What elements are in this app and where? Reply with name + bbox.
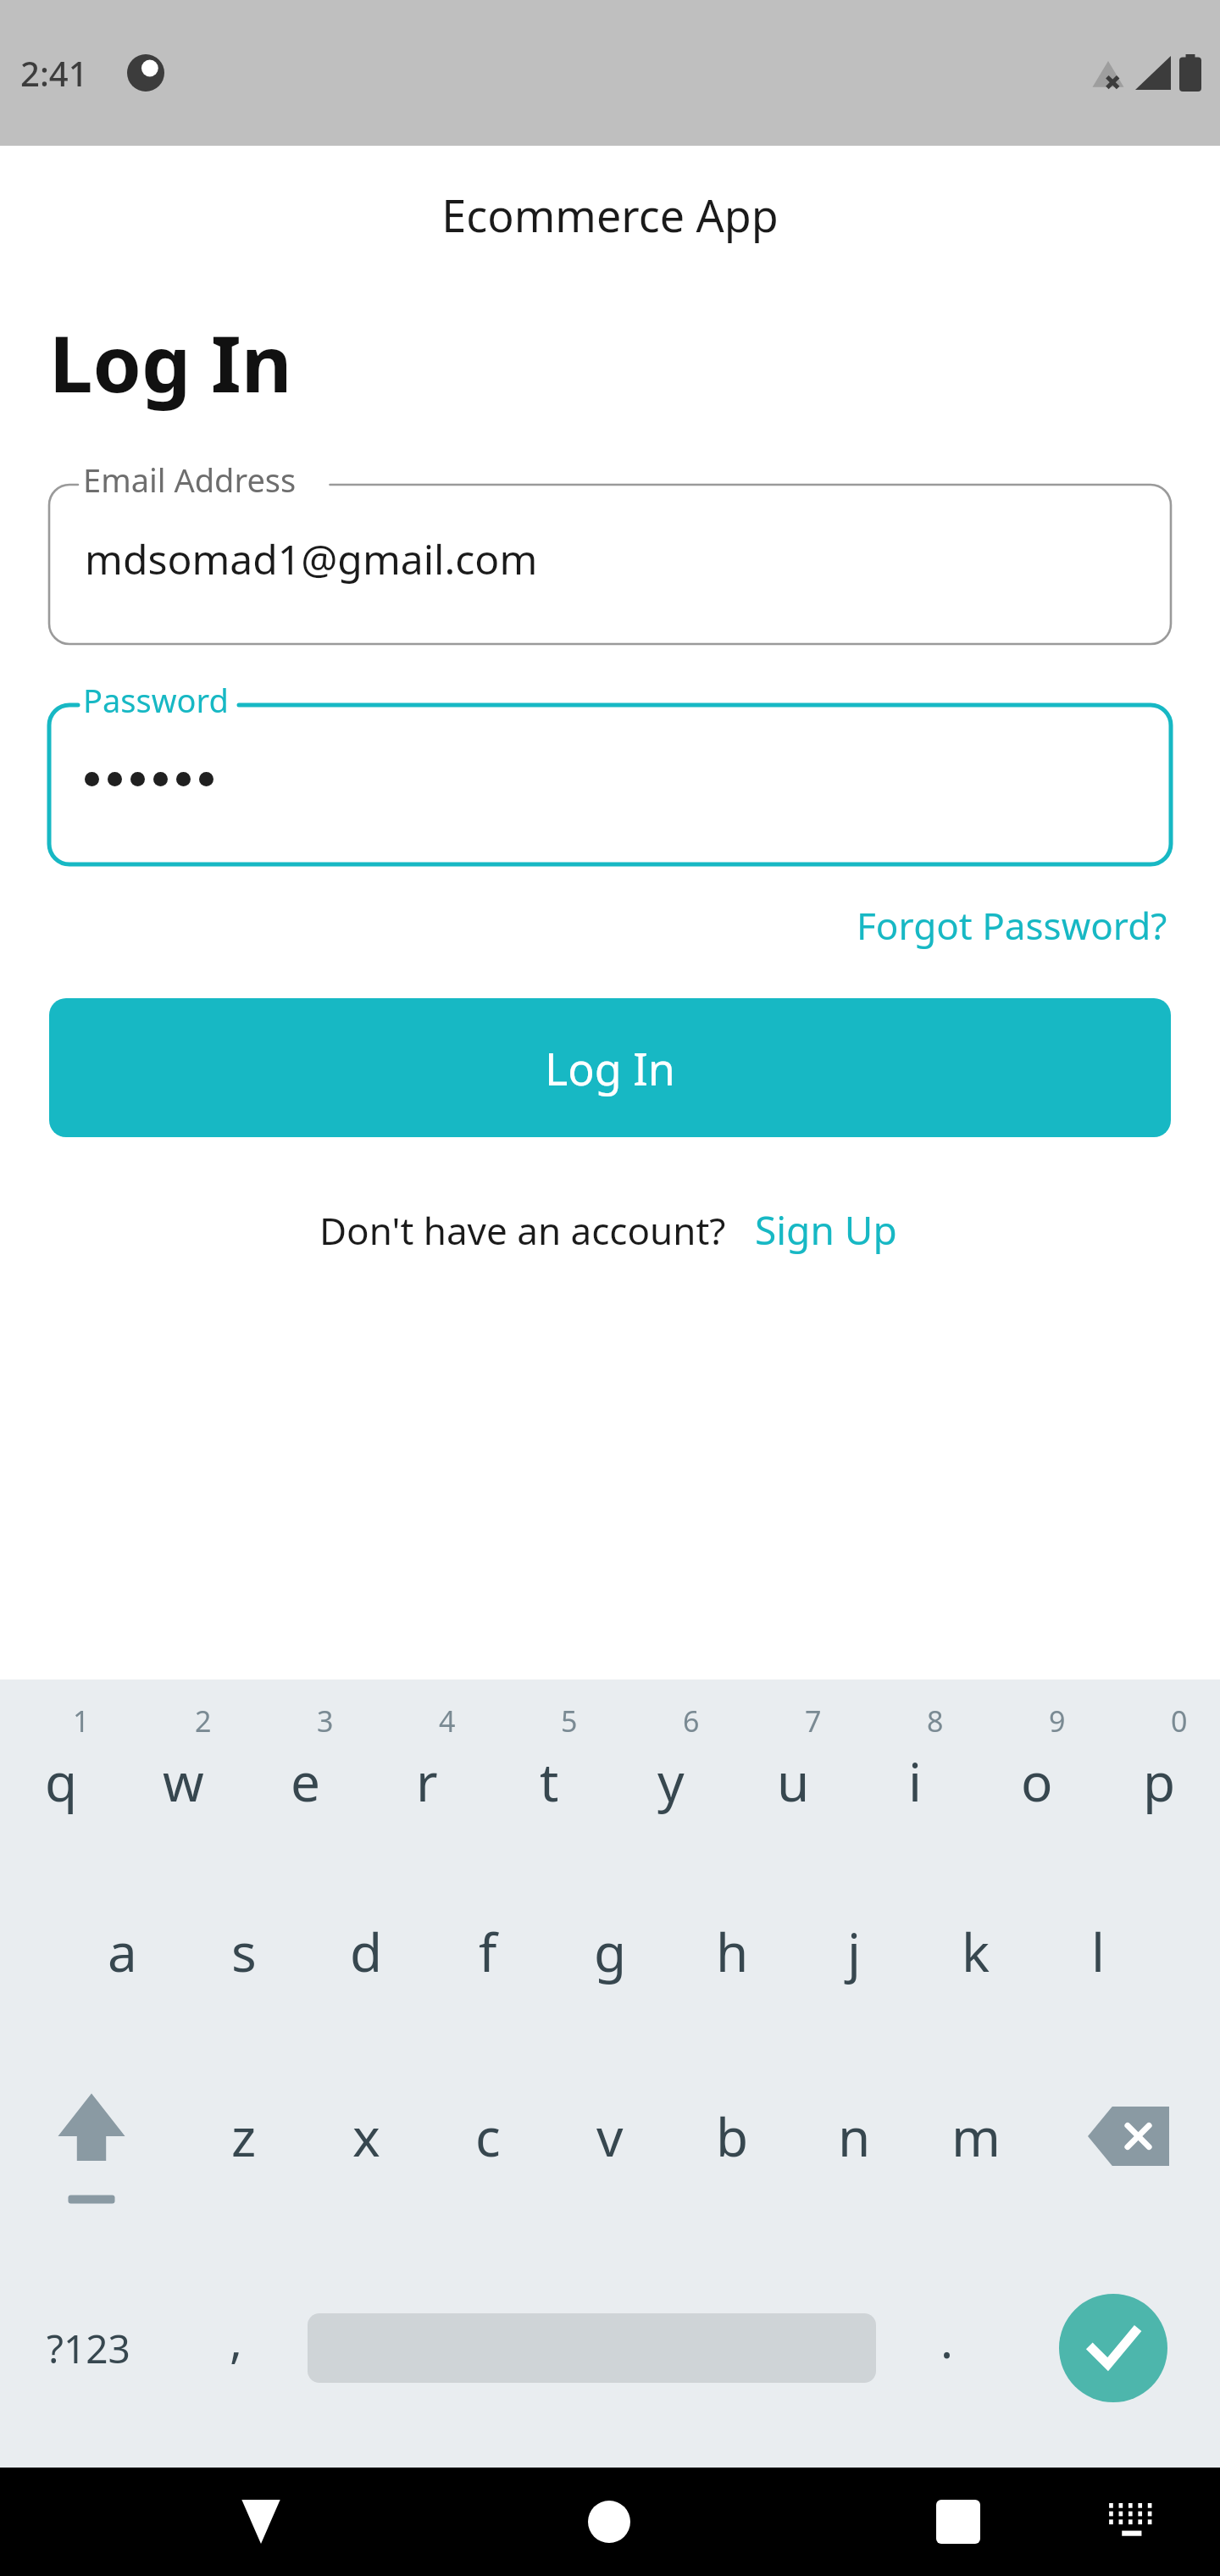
- button[interactable]: .: [888, 2229, 1006, 2468]
- staticText: Log In: [49, 309, 292, 415]
- staticText: g: [594, 1916, 627, 1987]
- staticText: i: [908, 1746, 922, 1817]
- staticText: a: [108, 1916, 137, 1987]
- button[interactable]: Recent apps: [871, 2468, 1045, 2576]
- button[interactable]: ,: [177, 2229, 296, 2468]
- button[interactable]: Home: [522, 2468, 696, 2576]
- button[interactable]: 7: [732, 1679, 854, 1859]
- staticText: Sign Up: [755, 1203, 897, 1257]
- button[interactable]: ?123: [0, 2229, 177, 2468]
- staticText: 5: [561, 1702, 578, 1740]
- staticText: n: [838, 2101, 871, 2172]
- staticText: o: [1021, 1746, 1053, 1817]
- button[interactable]: v: [549, 2044, 671, 2229]
- staticText: k: [962, 1916, 990, 1987]
- button[interactable]: z: [183, 2044, 305, 2229]
- button[interactable]: 1: [0, 1679, 122, 1859]
- button[interactable]: 5: [488, 1679, 610, 1859]
- staticText: 2: [195, 1702, 212, 1740]
- button[interactable]: 2: [122, 1679, 244, 1859]
- staticText: Password: [83, 678, 229, 722]
- staticText: 6: [683, 1702, 700, 1740]
- staticText: d: [350, 1916, 383, 1987]
- button[interactable]: d: [305, 1859, 427, 2044]
- button[interactable]: Log In: [49, 998, 1171, 1137]
- staticText: Email Address: [83, 458, 297, 502]
- staticText: t: [540, 1746, 559, 1817]
- staticText: u: [777, 1746, 810, 1817]
- staticText: Don't have an account?: [319, 1205, 726, 1256]
- staticText: r: [416, 1746, 438, 1817]
- staticText: z: [231, 2101, 257, 2172]
- staticText: c: [475, 2101, 501, 2172]
- button[interactable]: n: [793, 2044, 915, 2229]
- staticText: b: [716, 2101, 749, 2172]
- staticText: 0: [1171, 1702, 1188, 1740]
- button[interactable]: 3: [244, 1679, 366, 1859]
- staticText: f: [479, 1916, 497, 1987]
- button[interactable]: 6: [610, 1679, 732, 1859]
- button[interactable]: 8: [854, 1679, 976, 1859]
- button[interactable]: x: [305, 2044, 427, 2229]
- button[interactable]: b: [671, 2044, 793, 2229]
- staticText: Forgot Password?: [857, 900, 1167, 951]
- button[interactable]: Forgot Password?: [853, 895, 1171, 956]
- button[interactable]: Shift: [0, 2044, 183, 2229]
- staticText: ,: [230, 2307, 243, 2372]
- staticText: 3: [317, 1702, 334, 1740]
- staticText: 8: [927, 1702, 944, 1740]
- staticText: e: [291, 1746, 320, 1817]
- staticText: ?123: [47, 2322, 130, 2375]
- button[interactable]: c: [427, 2044, 549, 2229]
- other: Space: [296, 2229, 888, 2468]
- button[interactable]: Switch keyboard: [1045, 2468, 1220, 2576]
- staticText: .: [940, 2307, 954, 2372]
- staticText: 1: [73, 1702, 90, 1740]
- staticText: w: [163, 1746, 204, 1817]
- button[interactable]: 4: [366, 1679, 488, 1859]
- button[interactable]: l: [1037, 1859, 1159, 2044]
- button[interactable]: 9: [976, 1679, 1098, 1859]
- button[interactable]: Email Address: [49, 473, 1171, 644]
- staticText: l: [1091, 1916, 1105, 1987]
- staticText: s: [231, 1916, 257, 1987]
- staticText: v: [596, 2101, 624, 2172]
- staticText: j: [847, 1916, 861, 1987]
- button[interactable]: a: [61, 1859, 183, 2044]
- button[interactable]: g: [549, 1859, 671, 2044]
- staticText: mdsomad1@gmail.com: [85, 531, 538, 586]
- button[interactable]: [308, 2313, 876, 2383]
- staticText: 7: [805, 1702, 822, 1740]
- button[interactable]: Enter: [1006, 2229, 1220, 2468]
- button[interactable]: 0: [1098, 1679, 1220, 1859]
- button[interactable]: Backspace: [1037, 2044, 1220, 2229]
- staticText: x: [352, 2101, 380, 2172]
- button[interactable]: m: [915, 2044, 1037, 2229]
- staticText: Log In: [545, 1038, 675, 1098]
- button[interactable]: s: [183, 1859, 305, 2044]
- button[interactable]: Password: [49, 693, 1171, 864]
- staticText: m: [951, 2101, 1001, 2172]
- staticText: p: [1143, 1746, 1176, 1817]
- staticText: 9: [1049, 1702, 1066, 1740]
- button[interactable]: Hide keyboard: [174, 2468, 347, 2576]
- staticText: h: [716, 1916, 749, 1987]
- staticText: Ecommerce App: [0, 185, 1220, 245]
- button[interactable]: k: [915, 1859, 1037, 2044]
- staticText: q: [45, 1746, 78, 1817]
- button[interactable]: Sign Up: [751, 1198, 901, 1262]
- staticText: 2:41: [20, 50, 88, 96]
- staticText: 4: [439, 1702, 456, 1740]
- button[interactable]: h: [671, 1859, 793, 2044]
- staticText: y: [657, 1746, 685, 1817]
- button[interactable]: f: [427, 1859, 549, 2044]
- button[interactable]: j: [793, 1859, 915, 2044]
